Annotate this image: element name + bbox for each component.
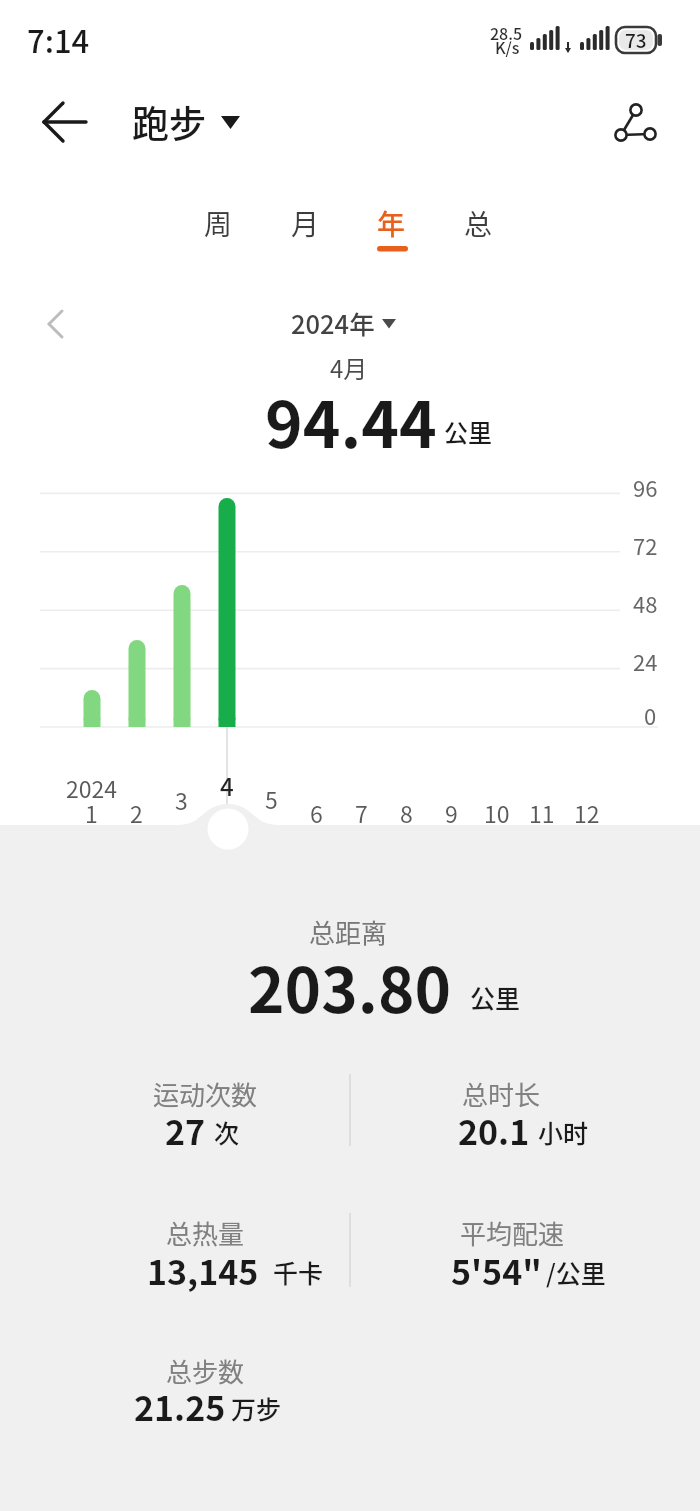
staticText: 24 bbox=[633, 645, 658, 677]
staticText: 2024 bbox=[66, 771, 118, 804]
staticText: 11 bbox=[529, 796, 555, 829]
staticText: 4月 bbox=[330, 350, 368, 385]
staticText: 94.44 bbox=[265, 374, 437, 467]
staticText: 48 bbox=[633, 587, 658, 619]
staticText: 5 bbox=[265, 782, 278, 815]
staticText: 73 bbox=[625, 26, 647, 54]
staticText: 1 bbox=[85, 796, 98, 829]
staticText: 13,145 bbox=[147, 1246, 259, 1295]
button[interactable]: 月 bbox=[291, 203, 320, 244]
staticText: 20.1 bbox=[458, 1106, 530, 1155]
staticText: 21.25 bbox=[134, 1382, 226, 1431]
staticText: 总热量 bbox=[166, 1214, 245, 1252]
staticText: 9 bbox=[445, 796, 458, 829]
staticText: 72 bbox=[633, 529, 658, 561]
staticText: 27 bbox=[165, 1106, 206, 1155]
staticText: 公里 bbox=[444, 414, 492, 449]
staticText: 4 bbox=[220, 768, 234, 803]
staticText: 平均配速 bbox=[460, 1214, 565, 1252]
staticText: 总距离 bbox=[309, 913, 388, 951]
staticText: 6 bbox=[310, 796, 323, 829]
staticText: K/s bbox=[495, 35, 520, 58]
staticText: 小时 bbox=[538, 1114, 589, 1150]
staticText: 总步数 bbox=[166, 1352, 245, 1390]
staticText: 7:14 bbox=[27, 17, 90, 62]
staticText: 公里 bbox=[470, 979, 521, 1015]
button[interactable]: 跑步 bbox=[132, 95, 206, 149]
button[interactable] bbox=[206, 807, 250, 851]
button[interactable]: 周 bbox=[204, 203, 233, 244]
staticText: 203.80 bbox=[248, 941, 452, 1031]
button[interactable]: 年 bbox=[377, 203, 406, 244]
staticText: 10 bbox=[484, 796, 510, 829]
button[interactable]: 总 bbox=[464, 203, 493, 244]
staticText: 运动次数 bbox=[153, 1075, 258, 1113]
staticText: /公里 bbox=[546, 1254, 606, 1290]
button[interactable] bbox=[608, 94, 664, 150]
staticText: 0 bbox=[644, 699, 657, 731]
staticText: 3 bbox=[175, 783, 188, 816]
staticText: 28.5 bbox=[490, 21, 523, 44]
staticText: 96 bbox=[633, 471, 658, 503]
staticText: 万步 bbox=[231, 1390, 282, 1426]
staticText: 8 bbox=[400, 796, 413, 829]
button[interactable] bbox=[37, 94, 93, 150]
staticText: 12 bbox=[574, 796, 600, 829]
staticText: 次 bbox=[214, 1114, 240, 1150]
button[interactable] bbox=[35, 303, 75, 343]
staticText: 5'54" bbox=[451, 1246, 542, 1295]
staticText: 千卡 bbox=[273, 1254, 324, 1290]
staticText: 2 bbox=[130, 796, 143, 829]
staticText: 总时长 bbox=[462, 1075, 541, 1113]
button[interactable]: 2024年 bbox=[291, 304, 375, 341]
staticText: 7 bbox=[355, 796, 368, 829]
